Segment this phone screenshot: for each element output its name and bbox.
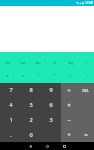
staticText: 6 [49, 101, 53, 109]
staticText: cos [20, 60, 26, 64]
button[interactable]: 1 [0, 112, 21, 127]
staticText: ) [69, 73, 71, 78]
button[interactable]: − [61, 112, 77, 127]
button[interactable]: Back [22, 142, 39, 150]
button[interactable]: π [0, 69, 15, 81]
button[interactable]: 5 [21, 97, 41, 112]
button[interactable]: + [61, 127, 77, 142]
button[interactable]: Home [39, 142, 56, 150]
staticText: ! [86, 73, 87, 78]
button[interactable]: ( [78, 54, 94, 69]
button[interactable]: ln [46, 54, 62, 69]
staticText: 9 [49, 86, 53, 94]
staticText: 2 [29, 116, 33, 124]
staticText: √ [53, 73, 56, 77]
staticText: ^ [37, 73, 40, 78]
button[interactable]: cos [15, 54, 30, 69]
staticText: e [22, 73, 24, 78]
button[interactable]: log [62, 54, 78, 69]
staticText: − [67, 116, 71, 123]
button[interactable]: 8 [21, 83, 41, 97]
staticText: tan [35, 60, 41, 64]
staticText: ÷ [67, 87, 71, 94]
staticText: 4 [9, 101, 13, 109]
staticText: . [10, 131, 12, 139]
button[interactable]: = [77, 127, 94, 142]
staticText: 8 [29, 86, 33, 94]
staticText: × [67, 101, 71, 108]
staticText: 0 [29, 131, 33, 139]
button[interactable]: ÷ [61, 83, 77, 97]
staticText: log [68, 60, 73, 64]
staticText: sin [5, 60, 10, 64]
button[interactable]: √ [46, 69, 62, 81]
staticText: 1 [9, 116, 13, 124]
staticText: = [84, 131, 88, 138]
button[interactable]: 3 [41, 112, 61, 127]
button[interactable]: × [61, 97, 77, 112]
button[interactable]: 6 [41, 97, 61, 112]
button[interactable]: 0 [21, 127, 41, 142]
staticText: 5 [29, 101, 33, 109]
button[interactable]: e [15, 69, 30, 81]
button[interactable]: 7 [0, 83, 21, 97]
staticText: ( [86, 60, 87, 64]
staticText: 12:00 [85, 1, 94, 5]
staticText: DEL [82, 88, 89, 93]
staticText: π [6, 73, 9, 78]
button[interactable]: tan [30, 54, 46, 69]
button[interactable]: DEL [77, 83, 94, 97]
button[interactable]: Recents [56, 142, 73, 150]
button[interactable]: 4 [0, 97, 21, 112]
button[interactable]: . [0, 127, 21, 142]
button[interactable]: 2 [21, 112, 41, 127]
button[interactable]: sin [0, 54, 15, 69]
staticText: ln [53, 60, 56, 64]
staticText: + [67, 131, 71, 138]
staticText: 3 [49, 116, 53, 124]
button[interactable]: 9 [41, 83, 61, 97]
staticText: 7 [9, 86, 13, 94]
